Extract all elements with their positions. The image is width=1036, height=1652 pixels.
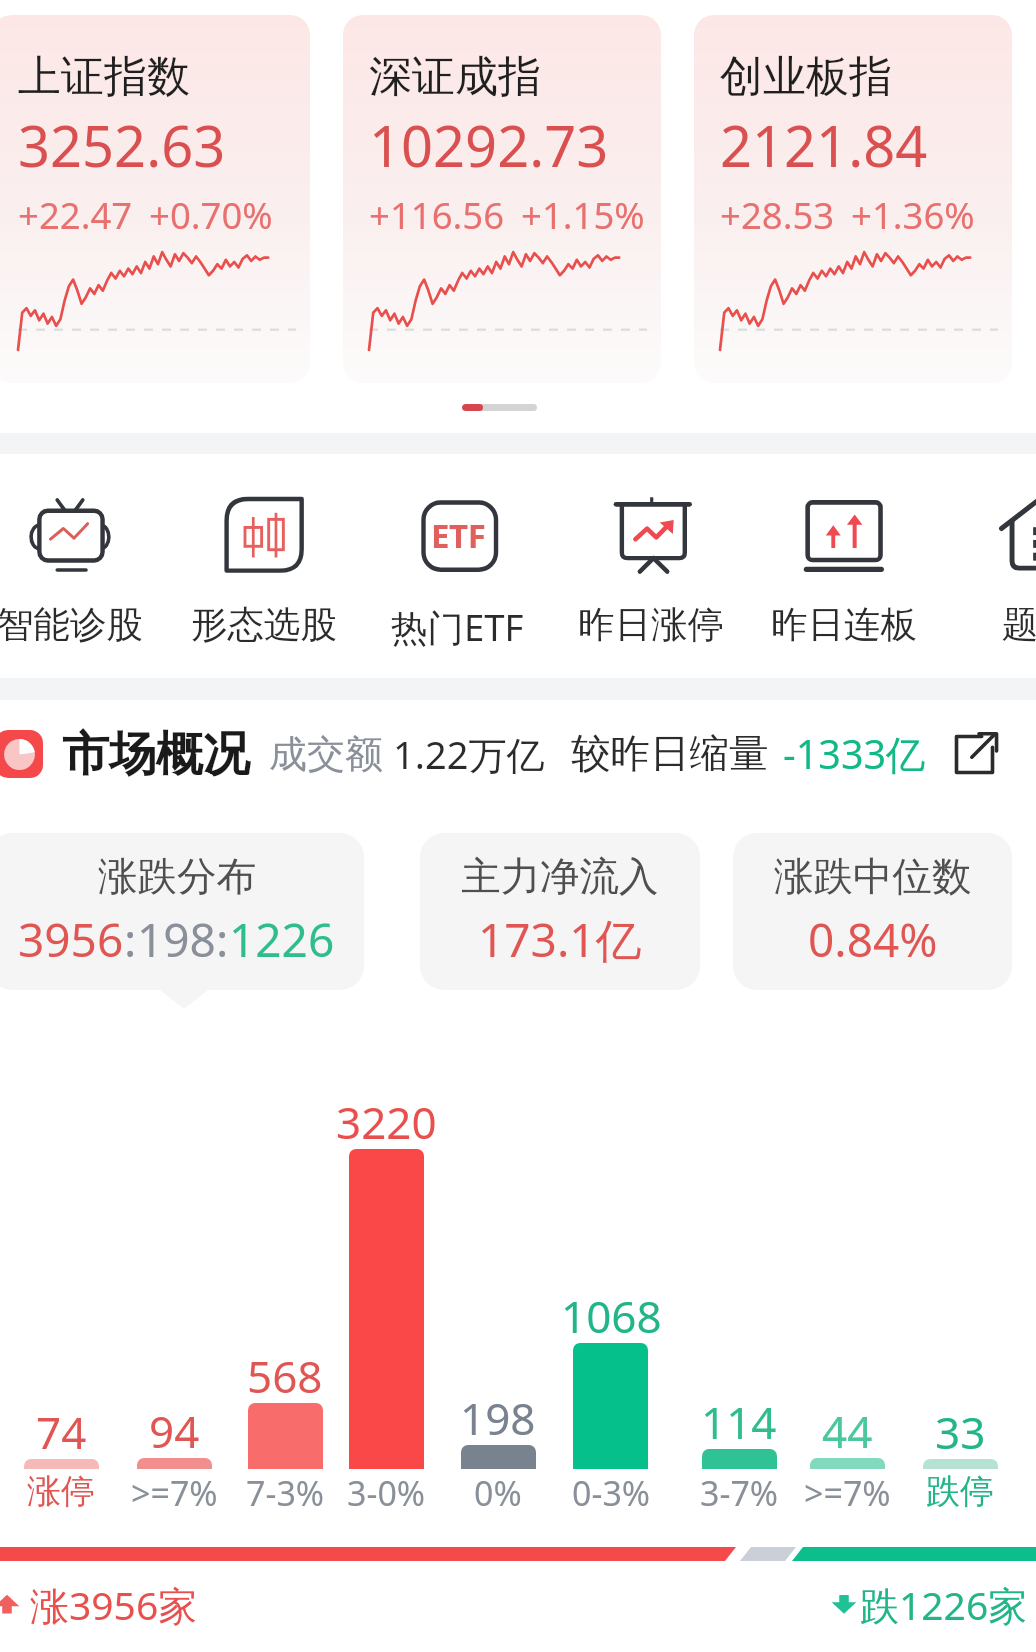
staticText: 形态选股	[191, 602, 337, 648]
staticText: >=7%	[804, 1470, 891, 1516]
staticText: 44	[822, 1401, 873, 1461]
staticText: ETF	[431, 513, 486, 558]
staticText: 深证成指	[369, 50, 541, 104]
staticText: :	[216, 908, 229, 971]
staticText: 创业板指	[720, 50, 892, 104]
staticText: 昨日连板	[771, 602, 917, 648]
button[interactable]: 展开详情	[944, 724, 1004, 784]
staticText: :	[124, 908, 137, 971]
button[interactable]: 昨日涨停	[554, 455, 748, 675]
staticText: 跌停	[926, 1470, 994, 1513]
button[interactable]: 深证成指	[343, 15, 661, 383]
button[interactable]: 昨日连板	[747, 455, 941, 675]
staticText: 市场概况	[62, 725, 250, 784]
staticText: 跌1226家	[860, 1578, 1028, 1630]
staticText: 智能诊股	[0, 602, 143, 648]
staticText: 114	[701, 1392, 777, 1452]
staticText: +116.56	[369, 190, 505, 240]
staticText: 涨3956家	[30, 1578, 198, 1630]
staticText: 10292.73	[369, 107, 609, 183]
staticText: 涨跌分布	[98, 852, 256, 902]
staticText: 热门ETF	[391, 602, 524, 652]
staticText: 题材	[1002, 602, 1036, 648]
staticText: 3220	[336, 1092, 437, 1152]
staticText: 1068	[561, 1286, 662, 1346]
staticText: 3956	[18, 908, 124, 971]
staticText: 3252.63	[18, 107, 226, 183]
staticText: 成交额	[269, 730, 383, 778]
staticText: 74	[36, 1402, 87, 1462]
staticText: 0%	[474, 1470, 522, 1516]
staticText: 94	[149, 1401, 200, 1461]
staticText: 3-0%	[347, 1470, 426, 1516]
staticText: -1333亿	[783, 727, 926, 781]
staticText: +1.36%	[851, 190, 975, 240]
staticText: 0-3%	[572, 1470, 651, 1516]
staticText: 568	[247, 1346, 323, 1406]
staticText: >=7%	[131, 1470, 218, 1516]
button[interactable]: 涨跌分布	[0, 833, 364, 990]
staticText: +0.70%	[149, 190, 273, 240]
staticText: 198	[137, 908, 216, 971]
staticText: 7-3%	[246, 1470, 325, 1516]
button[interactable]: 涨跌中位数	[733, 833, 1012, 990]
staticText: 昨日涨停	[578, 602, 724, 648]
button[interactable]: 智能诊股	[0, 455, 167, 675]
staticText: 涨跌中位数	[774, 852, 972, 902]
staticText: 主力净流入	[461, 852, 659, 902]
staticText: 3-7%	[700, 1470, 779, 1516]
button[interactable]: 形态选股	[167, 455, 361, 675]
staticText: 涨停	[27, 1470, 95, 1513]
staticText: +22.47	[18, 190, 133, 240]
button[interactable]: 创业板指	[694, 15, 1012, 383]
button[interactable]: 题材	[941, 455, 1036, 675]
staticText: 198	[460, 1388, 536, 1448]
staticText: 173.1亿	[478, 908, 642, 971]
staticText: 较昨日缩量	[571, 729, 769, 779]
button[interactable]: ETF	[360, 455, 554, 675]
staticText: 33	[935, 1402, 986, 1462]
staticText: 1.22万亿	[393, 728, 545, 780]
staticText: 1226	[229, 908, 335, 971]
staticText: 2121.84	[720, 107, 928, 183]
staticText: 0.84%	[808, 908, 938, 971]
staticText: +28.53	[720, 190, 835, 240]
button[interactable]: 上证指数	[0, 15, 310, 383]
button[interactable]: 主力净流入	[420, 833, 700, 990]
staticText: +1.15%	[521, 190, 645, 240]
staticText: 上证指数	[18, 50, 190, 104]
